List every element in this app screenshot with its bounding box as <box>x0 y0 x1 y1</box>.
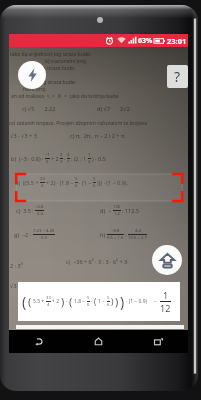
button[interactable]: Solve <box>152 245 182 275</box>
staticText: c) π, 2π, π − 2 i 2 + π. <box>70 132 126 139</box>
staticText: -3 <box>129 31 133 37</box>
staticText: h) <box>100 231 106 238</box>
staticText: 4 <box>41 183 44 189</box>
staticText: ) <box>61 294 65 309</box>
staticText: √18 <box>127 38 135 44</box>
staticText: c) −36 + 6² · 3 : 3 · 6² + 3· <box>66 258 129 265</box>
staticText: : (2 : 1 <box>71 155 87 162</box>
staticText: 135 <box>113 204 121 210</box>
staticText: ) · 0.5 <box>92 155 106 162</box>
staticText: ( <box>22 292 27 311</box>
staticText: 7 <box>67 159 70 165</box>
staticText: · <box>64 155 66 162</box>
staticText: √18 <box>141 38 149 44</box>
staticText: 1 <box>88 152 91 158</box>
staticText: ) <box>115 294 119 309</box>
staticText: 5 <box>93 176 96 182</box>
staticText: ) <box>120 292 125 311</box>
staticText: · (1 − 0.9) <box>126 298 148 305</box>
button[interactable]: Toggle flash <box>18 61 46 89</box>
staticText: 6 <box>107 302 110 308</box>
staticText: od zadanih brojeva. Provjeri džepnim rač… <box>9 120 147 127</box>
staticText: · (1 − <box>79 179 92 186</box>
staticText: 3 <box>60 159 63 165</box>
staticText: + 2) · (1.8 − <box>46 179 74 186</box>
button[interactable]: Home <box>68 330 128 353</box>
staticText: − <box>154 298 157 305</box>
staticText: 6 <box>75 183 78 189</box>
button[interactable]: Back <box>9 330 68 353</box>
staticText: √3 · √3 + 3 <box>10 132 37 139</box>
staticText: 4 <box>47 302 50 308</box>
staticText: √32 <box>141 31 149 37</box>
staticText: 1 <box>163 289 169 301</box>
button[interactable]: Recent apps <box>128 330 188 353</box>
staticText: ))) · (1 − 0.9). <box>97 179 128 186</box>
staticText: 6 <box>87 302 90 308</box>
staticText: an od makova <, > ili = tako da tvrdnja … <box>11 93 119 100</box>
staticText: d) ((5.5 + <box>15 179 39 186</box>
staticText: b) iracionalni broj. <box>45 58 88 65</box>
staticText: nalni broj. <box>23 86 47 93</box>
staticText: 2 <box>88 159 91 165</box>
staticText: 2 : 3³ <box>10 262 23 269</box>
staticText: c) √5 2.22 <box>22 105 56 112</box>
staticText: 9.5 + 1.6 <box>107 235 124 241</box>
staticText: 5 <box>107 295 110 301</box>
staticText: 33 <box>46 295 51 301</box>
staticText: + 2 <box>51 155 59 162</box>
button[interactable]: Help <box>167 65 188 88</box>
staticText: −2.8 <box>35 204 44 210</box>
staticText: 1.8 − <box>74 298 86 305</box>
staticText: ? <box>174 67 181 86</box>
staticText: 3 <box>67 152 70 158</box>
staticText: ( <box>69 294 73 309</box>
staticText: tako da vrijednost tog izraza bude: <box>10 51 91 58</box>
staticText: c) 3.5 : <box>16 207 34 214</box>
staticText: g) −2 · <box>14 231 32 238</box>
staticText: 63% <box>138 36 153 46</box>
staticText: 5 <box>87 295 90 301</box>
staticText: c) <box>121 34 126 41</box>
staticText: d) √7 2√2 <box>97 105 130 112</box>
staticText: 7.23 − 4.26 <box>33 228 55 234</box>
staticText: ( <box>28 294 32 309</box>
staticText: 1 − <box>98 298 106 305</box>
staticText: 5 <box>46 159 49 165</box>
staticText: nalni broj. <box>23 72 47 79</box>
staticText: 1.2 <box>114 211 120 217</box>
staticText: 23:01 <box>167 36 187 46</box>
staticText: √3 <box>10 282 17 289</box>
staticText: 5 <box>75 176 78 182</box>
staticText: b) (−3 : 0.8) · <box>11 155 44 162</box>
staticText: 4.4 <box>135 228 141 234</box>
staticText: −8.8 <box>111 228 120 234</box>
staticText: · <box>91 298 93 305</box>
staticText: 0.4 <box>37 211 43 217</box>
staticText: 19.5 + 2.7 <box>128 235 147 241</box>
staticText: 2 <box>60 152 63 158</box>
staticText: 12 <box>160 302 171 314</box>
button[interactable]: ( <box>18 282 180 321</box>
staticText: 6 <box>93 183 96 189</box>
staticText: d) − <box>100 207 112 214</box>
staticText: + 2 <box>52 298 60 305</box>
staticText: ednost tog izraza bude: <box>21 79 76 86</box>
staticText: : 112.5 <box>122 207 139 214</box>
staticText: ) <box>111 296 114 307</box>
staticText: −1 <box>45 152 50 158</box>
staticText: + <box>136 34 140 41</box>
staticText: dnost tog izraza bude: <box>23 65 76 72</box>
staticText: 33 <box>40 176 45 182</box>
staticText: · <box>66 298 68 305</box>
staticText: ( <box>94 296 97 307</box>
staticText: 0.3 <box>41 235 47 241</box>
staticText: : <box>125 231 127 238</box>
staticText: 5.5 + <box>33 298 45 305</box>
